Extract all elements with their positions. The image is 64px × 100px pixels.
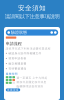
staticText: 等待審核通知 xyxy=(8,67,26,70)
staticText: 查看更多 xyxy=(7,88,19,92)
staticText: 週一至週五 上午九時起 xyxy=(17,76,48,79)
staticText: 請詳閱以下注意事項說明 xyxy=(4,13,59,20)
staticText: 臨櫃辦理請提前預約 xyxy=(17,85,44,88)
staticText: 安全須知 xyxy=(18,4,46,12)
staticText: 例假日及國定假日休息 xyxy=(17,80,47,84)
staticText: 填寫申請表格 xyxy=(8,57,26,60)
staticText: 驗證狀態 xyxy=(11,30,27,35)
staticText: 申請流程 xyxy=(6,41,22,46)
staticText: 請依序完成下列各項步驟作業流程 xyxy=(6,47,51,50)
staticText: 確認身分證件與相關文件 xyxy=(8,52,41,55)
button[interactable]: 確認身分證件與相關文件 xyxy=(6,51,58,56)
button[interactable]: 繳交相關規費 xyxy=(6,61,58,66)
staticText: 服務時間 xyxy=(6,72,18,75)
button[interactable]: 等待審核通知 xyxy=(6,66,58,71)
staticText: 繳交相關規費 xyxy=(8,62,26,65)
button[interactable]: 查看更多 xyxy=(6,88,20,91)
button[interactable]: 驗證狀態 xyxy=(6,29,58,36)
button[interactable]: 填寫申請表格 xyxy=(6,56,58,61)
